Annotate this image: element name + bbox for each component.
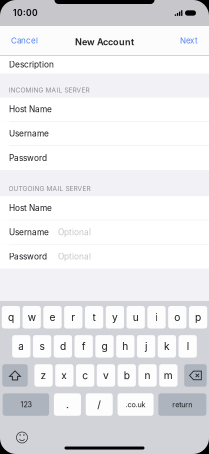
- staticText: INCOMING MAIL SERVER: [8, 86, 89, 94]
- button[interactable]: Next: [177, 31, 201, 50]
- button[interactable]: k: [158, 335, 176, 358]
- button[interactable]: z: [34, 364, 53, 387]
- button[interactable]: Delete: [184, 364, 207, 387]
- staticText: return: [172, 400, 192, 409]
- staticText: d: [60, 340, 66, 352]
- staticText: j: [145, 340, 147, 352]
- staticText: Host Name: [9, 203, 52, 213]
- button[interactable]: j: [137, 335, 155, 358]
- button[interactable]: q: [2, 306, 20, 328]
- button[interactable]: /: [86, 393, 113, 416]
- staticText: w: [28, 311, 36, 323]
- staticText: m: [164, 369, 173, 382]
- staticText: Cancel: [11, 36, 38, 45]
- button[interactable]: Password: [0, 244, 209, 269]
- staticText: Host Name: [9, 104, 52, 114]
- button[interactable]: d: [54, 335, 72, 358]
- button[interactable]: u: [126, 306, 145, 328]
- staticText: t: [93, 311, 96, 323]
- staticText: v: [103, 369, 109, 382]
- staticText: 10:00: [13, 8, 38, 18]
- staticText: Optional: [58, 227, 91, 237]
- button[interactable]: Cancel: [8, 31, 41, 50]
- staticText: p: [195, 311, 201, 323]
- staticText: f: [82, 340, 86, 352]
- button[interactable]: n: [138, 364, 157, 387]
- staticText: c: [82, 369, 88, 382]
- button[interactable]: Host Name: [0, 97, 209, 122]
- button[interactable]: b: [118, 364, 136, 387]
- button[interactable]: Shift: [2, 364, 28, 387]
- staticText: Password: [9, 252, 47, 262]
- button[interactable]: Emoji keyboard: [14, 429, 30, 445]
- button[interactable]: v: [97, 364, 115, 387]
- staticText: y: [112, 311, 118, 323]
- staticText: x: [61, 369, 67, 382]
- button[interactable]: Username: [0, 122, 209, 146]
- button[interactable]: y: [106, 306, 124, 328]
- button[interactable]: o: [168, 306, 186, 328]
- staticText: h: [122, 340, 128, 352]
- button[interactable]: .: [54, 393, 81, 416]
- staticText: e: [49, 311, 55, 323]
- staticText: r: [71, 311, 75, 323]
- staticText: o: [174, 311, 180, 323]
- button[interactable]: a: [12, 335, 30, 358]
- staticText: Optional: [58, 252, 91, 262]
- button[interactable]: l: [179, 335, 197, 358]
- staticText: s: [40, 340, 45, 352]
- button[interactable]: c: [76, 364, 94, 387]
- staticText: n: [145, 369, 151, 382]
- staticText: b: [124, 369, 130, 382]
- staticText: New Account: [75, 36, 134, 47]
- staticText: i: [155, 311, 157, 323]
- staticText: z: [40, 369, 46, 382]
- staticText: Description: [9, 59, 54, 69]
- staticText: g: [101, 340, 107, 352]
- button[interactable]: 123: [3, 393, 49, 416]
- staticText: OUTGOING MAIL SERVER: [8, 185, 90, 193]
- button[interactable]: f: [74, 335, 93, 358]
- staticText: /: [97, 398, 101, 411]
- button[interactable]: m: [159, 364, 177, 387]
- button[interactable]: return: [158, 393, 206, 416]
- staticText: k: [164, 340, 170, 352]
- staticText: Username: [9, 128, 49, 138]
- staticText: Next: [180, 36, 198, 45]
- button[interactable]: h: [116, 335, 134, 358]
- button[interactable]: w: [22, 306, 41, 328]
- staticText: a: [18, 340, 24, 352]
- button[interactable]: r: [64, 306, 82, 328]
- staticText: 123: [20, 400, 31, 409]
- button[interactable]: Description: [0, 55, 209, 73]
- staticText: u: [133, 311, 139, 323]
- button[interactable]: e: [43, 306, 62, 328]
- button[interactable]: x: [55, 364, 73, 387]
- staticText: .co.uk: [125, 400, 145, 409]
- button[interactable]: Username: [0, 220, 209, 244]
- button[interactable]: Password: [0, 146, 209, 170]
- staticText: l: [187, 340, 189, 352]
- button[interactable]: Host Name: [0, 196, 209, 220]
- button[interactable]: p: [189, 306, 207, 328]
- button[interactable]: g: [95, 335, 114, 358]
- staticText: .: [66, 398, 69, 411]
- button[interactable]: t: [85, 306, 103, 328]
- button[interactable]: s: [33, 335, 51, 358]
- button[interactable]: .co.uk: [117, 393, 153, 416]
- staticText: Password: [9, 153, 47, 163]
- staticText: q: [8, 311, 14, 323]
- button[interactable]: i: [147, 306, 166, 328]
- staticText: Username: [9, 227, 49, 237]
